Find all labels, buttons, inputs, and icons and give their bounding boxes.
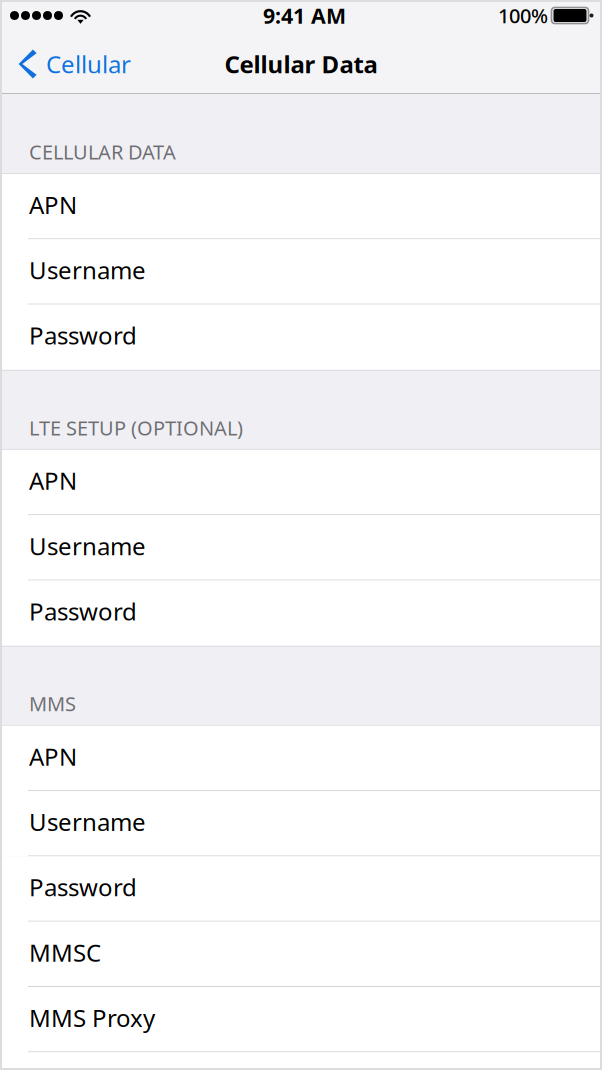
staticText: APN [29,740,77,772]
staticText: APN [29,465,77,496]
staticText: Password [29,595,137,627]
staticText: Maximum Message Size [29,1067,298,1070]
button[interactable]: Username [2,239,600,305]
staticText: LTE SETUP (OPTIONAL) [29,414,243,441]
staticText: CELLULAR DATA [29,138,176,165]
staticText: MMSC [29,936,101,968]
staticText: Password [29,319,137,351]
button[interactable]: APN [2,726,600,791]
button[interactable]: APN [2,174,600,239]
button[interactable]: Maximum Message Size [2,1052,600,1070]
staticText: 9:41 AM [263,1,346,30]
button[interactable]: Username [2,791,600,856]
button[interactable]: Password [2,580,600,646]
staticText: MMS [29,690,76,717]
staticText: Password [29,871,137,903]
staticText: APN [29,189,77,221]
staticText: Cellular Data [224,48,377,80]
button[interactable]: Password [2,856,600,922]
button[interactable]: MMS Proxy [2,987,600,1052]
staticText: Username [29,806,146,838]
staticText: MMS Proxy [29,1002,155,1034]
button[interactable]: Password [2,305,600,370]
button[interactable]: APN [2,450,600,515]
button[interactable]: Username [2,515,600,580]
staticText: 100% [498,2,548,29]
staticText: Username [29,254,146,286]
staticText: Username [29,530,146,562]
staticText: Cellular [46,48,131,80]
button[interactable]: Cellular [2,35,143,93]
button[interactable]: MMSC [2,922,600,987]
